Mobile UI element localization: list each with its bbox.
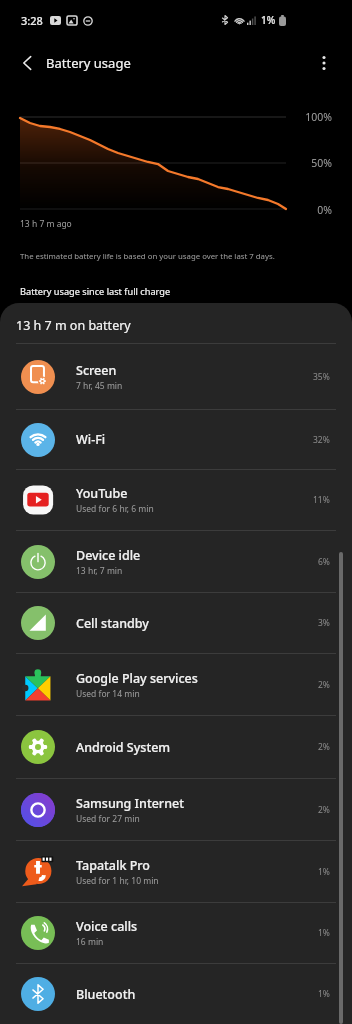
button[interactable]: Bluetooth — [0, 964, 352, 1024]
staticText: 13 h 7 m on battery — [16, 317, 131, 334]
button[interactable]: Screen — [0, 344, 352, 409]
button[interactable]: YouTube — [0, 470, 352, 530]
staticText: Used for 1 hr, 10 min — [76, 875, 159, 887]
staticText: 35% — [313, 371, 330, 383]
staticText: 1% — [318, 988, 330, 1000]
button[interactable]: Android System — [0, 716, 352, 778]
staticText: 1% — [318, 927, 330, 939]
staticText: 1% — [318, 866, 330, 878]
staticText: 2% — [318, 679, 330, 691]
button[interactable]: Wi-Fi — [0, 410, 352, 469]
button[interactable]: Cell standby — [0, 593, 352, 653]
staticText: Bluetooth — [76, 986, 136, 1003]
staticText: Screen — [76, 362, 117, 379]
staticText: 1% — [261, 13, 276, 27]
staticText: 3% — [318, 617, 330, 629]
staticText: 0% — [292, 203, 332, 217]
button[interactable]: Tapatalk Pro — [0, 841, 352, 902]
staticText: 32% — [313, 434, 330, 446]
button[interactable]: Google Play services — [0, 654, 352, 715]
button[interactable]: Back — [10, 46, 44, 80]
staticText: Google Play services — [76, 670, 198, 687]
staticText: The estimated battery life is based on y… — [20, 251, 275, 262]
staticText: 6% — [318, 556, 330, 568]
staticText: Wi-Fi — [76, 431, 106, 448]
staticText: Battery usage — [46, 54, 131, 72]
staticText: Cell standby — [76, 615, 149, 632]
button[interactable]: Samsung Internet — [0, 779, 352, 840]
button[interactable]: More options — [307, 46, 341, 80]
staticText: Samsung Internet — [76, 795, 184, 812]
staticText: 7 hr, 45 min — [76, 380, 123, 392]
staticText: 50% — [292, 156, 332, 170]
staticText: Android System — [76, 739, 171, 756]
staticText: Battery usage since last full charge — [20, 285, 171, 298]
staticText: 13 hr, 7 min — [76, 565, 123, 577]
staticText: Voice calls — [76, 918, 138, 935]
staticText: 2% — [318, 741, 330, 753]
staticText: Used for 14 min — [76, 688, 140, 700]
staticText: Tapatalk Pro — [76, 857, 150, 874]
staticText: Used for 27 min — [76, 813, 140, 825]
staticText: 3:28 — [21, 13, 43, 28]
staticText: 16 min — [76, 936, 104, 948]
button[interactable]: Voice calls — [0, 903, 352, 963]
staticText: 2% — [318, 804, 330, 816]
button[interactable]: Device idle — [0, 531, 352, 592]
staticText: Used for 6 hr, 6 min — [76, 503, 154, 515]
staticText: 11% — [313, 494, 330, 506]
staticText: 13 h 7 m ago — [20, 218, 72, 230]
staticText: YouTube — [76, 485, 128, 502]
staticText: Device idle — [76, 547, 141, 564]
staticText: 100% — [292, 110, 332, 124]
